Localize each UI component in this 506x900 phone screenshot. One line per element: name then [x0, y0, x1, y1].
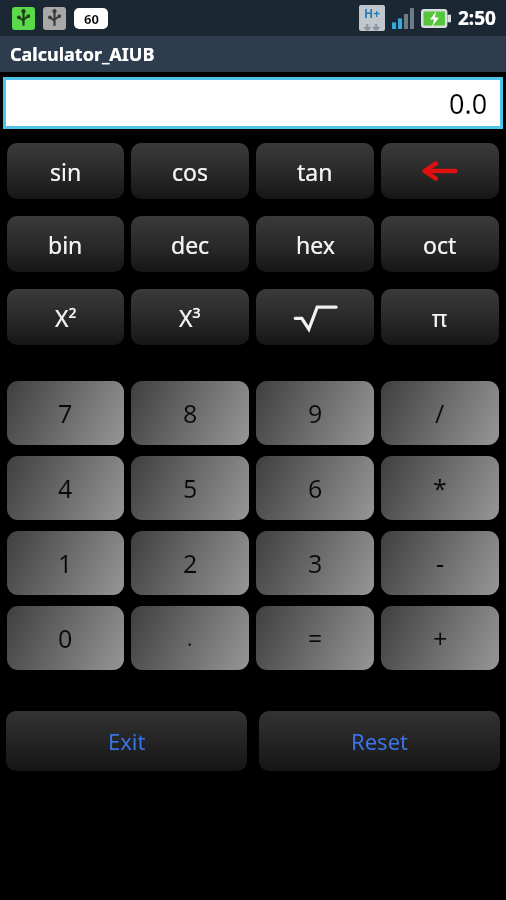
- staticText: hex: [296, 229, 335, 260]
- button[interactable]: Reset: [259, 711, 500, 771]
- staticText: oct: [423, 229, 457, 260]
- staticText: bin: [48, 229, 83, 260]
- staticText: H+: [364, 5, 381, 21]
- staticText: +: [433, 621, 448, 655]
- staticText: tan: [297, 156, 333, 187]
- button[interactable]: Exit: [6, 711, 247, 771]
- staticText: dec: [171, 229, 210, 260]
- button[interactable]: 2: [131, 531, 249, 595]
- button[interactable]: *: [381, 456, 499, 520]
- staticText: X³: [179, 302, 201, 333]
- button[interactable]: =: [256, 606, 374, 670]
- staticText: =: [308, 621, 323, 655]
- staticText: π: [432, 302, 448, 333]
- button[interactable]: X²: [7, 289, 124, 345]
- button[interactable]: π: [381, 289, 499, 345]
- staticText: *: [433, 471, 447, 505]
- staticText: Reset: [351, 726, 408, 756]
- button[interactable]: +: [381, 606, 499, 670]
- staticText: cos: [172, 156, 208, 187]
- button[interactable]: sin: [7, 143, 124, 199]
- button[interactable]: .: [131, 606, 249, 670]
- staticText: 6: [308, 471, 323, 505]
- button[interactable]: Backspace: [381, 143, 499, 199]
- button[interactable]: Square root: [256, 289, 374, 345]
- button[interactable]: 5: [131, 456, 249, 520]
- button[interactable]: 6: [256, 456, 374, 520]
- button[interactable]: 9: [256, 381, 374, 445]
- button[interactable]: -: [381, 531, 499, 595]
- staticText: 2: [183, 546, 198, 580]
- staticText: 4: [58, 471, 73, 505]
- button[interactable]: bin: [7, 216, 124, 272]
- staticText: 2:50: [458, 5, 496, 31]
- button[interactable]: 1: [7, 531, 124, 595]
- button[interactable]: 0: [7, 606, 124, 670]
- staticText: -: [436, 546, 445, 580]
- staticText: /: [435, 396, 445, 430]
- staticText: 3: [308, 546, 323, 580]
- staticText: Calculator_AIUB: [10, 42, 155, 67]
- staticText: 9: [308, 396, 323, 430]
- button[interactable]: hex: [256, 216, 374, 272]
- staticText: Exit: [108, 726, 146, 756]
- staticText: 8: [183, 396, 198, 430]
- button[interactable]: dec: [131, 216, 249, 272]
- button[interactable]: oct: [381, 216, 499, 272]
- button[interactable]: cos: [131, 143, 249, 199]
- staticText: 0: [58, 621, 73, 655]
- button[interactable]: tan: [256, 143, 374, 199]
- button[interactable]: 7: [7, 381, 124, 445]
- button[interactable]: 4: [7, 456, 124, 520]
- staticText: 60: [84, 10, 99, 28]
- staticText: 1: [58, 546, 73, 580]
- staticText: .: [187, 625, 193, 652]
- staticText: X²: [55, 302, 77, 333]
- button[interactable]: X³: [131, 289, 249, 345]
- button[interactable]: 8: [131, 381, 249, 445]
- staticText: 0.0: [449, 85, 488, 122]
- button[interactable]: /: [381, 381, 499, 445]
- staticText: sin: [50, 156, 82, 187]
- button[interactable]: 3: [256, 531, 374, 595]
- staticText: 5: [183, 471, 198, 505]
- staticText: 7: [58, 396, 73, 430]
